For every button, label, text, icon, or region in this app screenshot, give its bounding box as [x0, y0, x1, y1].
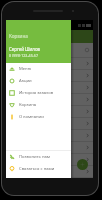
staticText: Позиция заказа: [10, 157, 46, 163]
button[interactable]: О компании: [6, 111, 71, 123]
button[interactable]: Позвонить нам: [6, 151, 71, 163]
button[interactable]: Позиция заказа: [6, 142, 93, 153]
staticText: Позиция заказа: [10, 73, 46, 79]
staticText: 8 (999) 123-45-67: [9, 53, 38, 58]
button[interactable]: Remove item: [84, 47, 90, 53]
staticText: Позиция заказа: [10, 169, 46, 175]
staticText: Корзина: [19, 34, 42, 41]
button[interactable]: Позиция заказа: [6, 154, 93, 165]
button[interactable]: Позиция заказа: [6, 118, 93, 129]
staticText: 1 шт. 520 руб.: [10, 51, 38, 56]
staticText: Позиция заказа: [10, 145, 46, 151]
button[interactable]: Связаться с нами: [6, 163, 71, 175]
staticText: Позиция заказа: [10, 61, 46, 67]
staticText: Позиция заказа: [10, 109, 46, 115]
button[interactable]: История заказов: [6, 87, 71, 99]
button[interactable]: Меню: [6, 63, 71, 75]
staticText: История заказов: [19, 90, 54, 96]
button[interactable]: Позиция заказа: [6, 94, 93, 105]
button[interactable]: Позиция заказа: [6, 106, 93, 117]
button[interactable]: Позиция заказа: [6, 166, 93, 177]
staticText: Связаться с нами: [19, 166, 55, 172]
staticText: Акции: [19, 78, 32, 84]
button[interactable]: Позиция заказа: [6, 82, 93, 93]
staticText: Позиция заказа: [10, 85, 46, 91]
staticText: Позвонить нам: [19, 154, 51, 160]
button[interactable]: Корзина: [6, 99, 71, 111]
button[interactable]: Пицца 4 сыра, 30 см: [6, 43, 93, 57]
staticText: Корзина: [19, 102, 37, 108]
button[interactable]: Позиция заказа: [6, 58, 93, 69]
staticText: Корзина: [9, 33, 28, 39]
staticText: Меню: [19, 66, 32, 72]
button[interactable]: Checkout: [77, 159, 88, 170]
staticText: О компании: [19, 114, 44, 120]
button[interactable]: Позиция заказа: [6, 130, 93, 141]
button[interactable]: Позиция заказа: [6, 70, 93, 81]
staticText: Пицца 4 сыра, 30 см: [10, 44, 56, 50]
staticText: Сергей Шилов: [9, 46, 40, 52]
button[interactable]: Open navigation drawer: [8, 33, 16, 41]
button[interactable]: Акции: [6, 75, 71, 87]
